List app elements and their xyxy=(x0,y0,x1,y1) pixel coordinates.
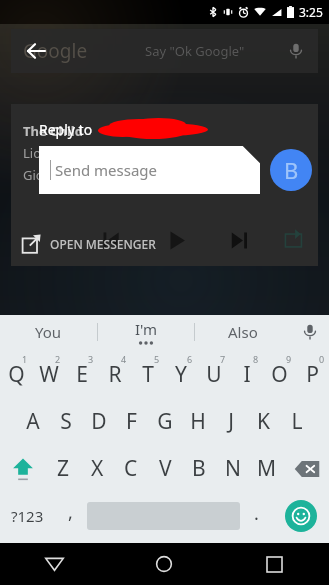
button[interactable]: R xyxy=(98,351,131,398)
button[interactable]: L xyxy=(280,398,313,445)
staticText: P xyxy=(306,360,319,389)
button[interactable]: C xyxy=(114,445,148,492)
staticText: The Child xyxy=(23,122,83,140)
staticText: T xyxy=(142,360,154,389)
staticText: C xyxy=(124,454,138,483)
staticText: N xyxy=(225,454,241,483)
staticText: 6 xyxy=(187,353,193,365)
staticText: A xyxy=(26,407,40,436)
staticText: 7 xyxy=(220,353,226,365)
staticText: V xyxy=(159,454,172,483)
staticText: 0 xyxy=(319,353,325,365)
staticText: D xyxy=(91,407,107,436)
button[interactable]: Send xyxy=(270,149,312,191)
button[interactable]: I'm xyxy=(98,319,194,339)
button[interactable]: Google xyxy=(11,29,318,73)
staticText: F xyxy=(126,407,137,436)
staticText: E xyxy=(76,360,88,389)
button[interactable]: W xyxy=(32,351,65,398)
button[interactable]: Q xyxy=(0,351,32,398)
staticText: , xyxy=(68,500,73,525)
staticText: Q xyxy=(8,360,25,389)
button[interactable]: X xyxy=(80,445,114,492)
button[interactable]: U xyxy=(197,351,230,398)
staticText: S xyxy=(60,407,72,436)
button[interactable]: Hide keyboard xyxy=(0,543,109,585)
button[interactable]: G xyxy=(148,398,181,445)
button[interactable]: K xyxy=(247,398,280,445)
staticText: Lio xyxy=(23,144,42,162)
button[interactable]: J xyxy=(214,398,247,445)
button[interactable]: E xyxy=(65,351,98,398)
button[interactable]: I xyxy=(230,351,263,398)
button[interactable]: S xyxy=(49,398,82,445)
button[interactable]: Building a St… xyxy=(11,180,318,240)
staticText: Y xyxy=(175,360,187,389)
staticText: 2 xyxy=(55,353,61,365)
staticText: Z xyxy=(57,454,70,483)
staticText: B xyxy=(192,454,206,483)
button[interactable]: OPEN MESSENGER xyxy=(21,222,156,266)
button[interactable]: Emoji xyxy=(285,500,317,532)
button[interactable]: Voice search xyxy=(280,35,312,67)
button[interactable]: Backspace xyxy=(284,445,329,492)
button[interactable]: N xyxy=(216,445,250,492)
staticText: Reply to xyxy=(39,120,93,139)
staticText: H xyxy=(190,407,206,436)
staticText: OPEN MESSENGER xyxy=(50,236,156,252)
button[interactable]: Home xyxy=(109,543,219,585)
button[interactable]: . xyxy=(240,492,273,540)
button[interactable]: H xyxy=(181,398,214,445)
staticText: U xyxy=(206,360,222,389)
staticText: R xyxy=(108,360,122,389)
staticText: J xyxy=(228,407,234,436)
button[interactable]: M xyxy=(250,445,284,492)
button[interactable]: Also xyxy=(195,315,291,349)
button[interactable]: , xyxy=(54,492,87,540)
staticText: ?123 xyxy=(11,506,44,526)
staticText: X xyxy=(91,454,104,483)
staticText: Also xyxy=(228,322,258,342)
button[interactable]: Voice input xyxy=(291,315,329,349)
staticText: 1 xyxy=(22,353,28,365)
staticText: I xyxy=(243,360,251,389)
button[interactable]: P xyxy=(296,351,329,398)
staticText: You xyxy=(35,322,62,342)
staticText: 4 xyxy=(121,353,127,365)
button[interactable]: T xyxy=(131,351,164,398)
staticText: Gio xyxy=(23,166,44,184)
staticText: I'm xyxy=(135,319,158,339)
staticText: 8 xyxy=(253,353,259,365)
staticText: 5 xyxy=(154,353,160,365)
button[interactable]: A xyxy=(16,398,49,445)
button[interactable]: Shift xyxy=(0,445,46,492)
button[interactable]: V xyxy=(148,445,182,492)
staticText: B xyxy=(284,155,299,185)
button[interactable]: O xyxy=(263,351,296,398)
staticText: L xyxy=(291,407,303,436)
button[interactable]: B xyxy=(182,445,216,492)
staticText: Say "Ok Google" xyxy=(145,42,245,60)
staticText: G xyxy=(157,407,173,436)
staticText: 3:25 xyxy=(299,4,323,20)
button[interactable]: Send message xyxy=(39,146,260,194)
staticText: . xyxy=(254,501,259,526)
staticText: 9 xyxy=(286,353,292,365)
staticText: Google xyxy=(23,38,88,64)
button[interactable]: F xyxy=(115,398,148,445)
staticText: O xyxy=(271,360,288,389)
staticText: M xyxy=(257,454,277,483)
staticText: Send message xyxy=(55,160,158,180)
button[interactable]: Recents xyxy=(219,543,329,585)
staticText: W xyxy=(39,360,59,389)
button[interactable]: Z xyxy=(46,445,80,492)
button[interactable]: D xyxy=(82,398,115,445)
button[interactable]: ?123 xyxy=(0,492,54,540)
button[interactable]: You xyxy=(0,315,97,349)
button[interactable]: Back xyxy=(23,38,49,64)
button[interactable]: Y xyxy=(164,351,197,398)
staticText: 1 xyxy=(297,186,304,201)
staticText: K xyxy=(257,407,270,436)
